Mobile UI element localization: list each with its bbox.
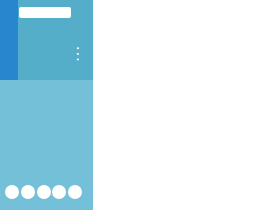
button[interactable]: Home xyxy=(5,185,19,199)
button[interactable]: More options xyxy=(70,40,86,56)
button[interactable]: Search xyxy=(19,7,71,18)
button[interactable]: Profile xyxy=(68,185,82,199)
button[interactable]: Create xyxy=(37,185,51,199)
button[interactable]: Notifications xyxy=(52,185,66,199)
button[interactable]: Explore xyxy=(21,185,35,199)
